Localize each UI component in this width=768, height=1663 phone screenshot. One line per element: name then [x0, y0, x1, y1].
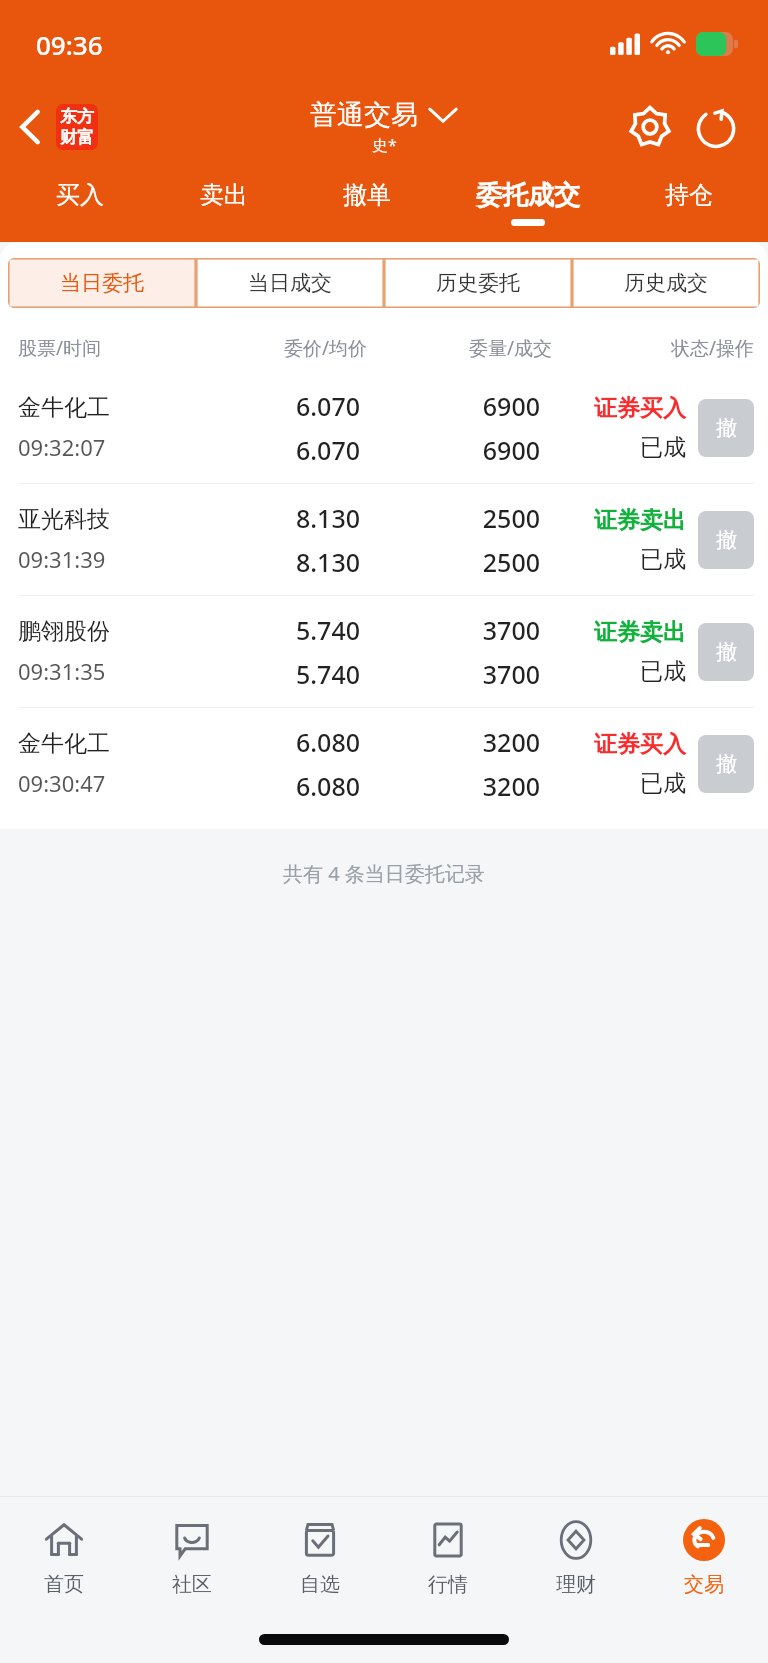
- button[interactable]: Refresh: [690, 101, 742, 153]
- staticText: 撤: [716, 639, 737, 665]
- staticText: 证券卖出: [594, 506, 686, 535]
- staticText: 鹏翎股份: [18, 617, 110, 646]
- button[interactable]: Back: [0, 98, 106, 156]
- staticText: 5.740: [295, 657, 360, 691]
- staticText: 普通交易: [310, 98, 418, 132]
- staticText: 股票/时间: [18, 335, 196, 361]
- staticText: 6.070: [295, 433, 360, 467]
- button[interactable]: 金牛化工: [0, 372, 768, 483]
- staticText: 历史委托: [436, 270, 520, 296]
- staticText: 撤: [716, 527, 737, 553]
- staticText: 3700: [482, 657, 540, 691]
- button[interactable]: 普通交易: [310, 98, 458, 156]
- staticText: 6.070: [295, 389, 360, 423]
- staticText: 证券买入: [594, 730, 686, 759]
- staticText: 委托成交: [476, 179, 580, 212]
- staticText: 持仓: [665, 180, 713, 210]
- staticText: 亚光科技: [18, 505, 110, 534]
- staticText: 金牛化工: [18, 393, 110, 422]
- staticText: 已成: [640, 433, 686, 462]
- staticText: 金牛化工: [18, 729, 110, 758]
- button[interactable]: 首页: [0, 1497, 128, 1615]
- staticText: 8.130: [295, 545, 360, 579]
- button[interactable]: 撤: [698, 623, 754, 681]
- staticText: 2500: [482, 545, 540, 579]
- button[interactable]: 当日成交: [196, 258, 384, 308]
- button[interactable]: 行情: [384, 1497, 512, 1615]
- button[interactable]: Settings: [624, 101, 676, 153]
- staticText: 证券买入: [594, 394, 686, 423]
- staticText: 09:31:39: [18, 544, 106, 574]
- staticText: 6.080: [295, 725, 360, 759]
- button[interactable]: 卖出: [152, 166, 295, 238]
- button[interactable]: 撤: [698, 735, 754, 793]
- button[interactable]: 历史成交: [572, 258, 760, 308]
- staticText: 自选: [300, 1572, 340, 1597]
- button[interactable]: 当日委托: [8, 258, 196, 308]
- staticText: 09:36: [36, 27, 103, 62]
- staticText: 卖出: [200, 180, 248, 210]
- staticText: 委量/成交: [381, 335, 552, 361]
- button[interactable]: 鹏翎股份: [0, 596, 768, 707]
- staticText: 当日成交: [248, 270, 332, 296]
- staticText: 东方: [60, 106, 94, 127]
- button[interactable]: 买入: [8, 166, 152, 238]
- staticText: 委价/均价: [196, 335, 367, 361]
- button[interactable]: 自选: [256, 1497, 384, 1615]
- staticText: 2500: [482, 501, 540, 535]
- staticText: 09:30:47: [18, 768, 106, 798]
- staticText: 交易: [684, 1572, 724, 1597]
- button[interactable]: 亚光科技: [0, 484, 768, 595]
- staticText: 首页: [44, 1572, 84, 1597]
- button[interactable]: 理财: [512, 1497, 640, 1615]
- staticText: 已成: [640, 545, 686, 574]
- staticText: 状态/操作: [566, 335, 754, 361]
- button[interactable]: 撤: [698, 511, 754, 569]
- staticText: 行情: [428, 1572, 468, 1597]
- staticText: 社区: [172, 1572, 212, 1597]
- staticText: 6900: [482, 389, 540, 423]
- staticText: 3700: [482, 613, 540, 647]
- button[interactable]: 金牛化工: [0, 708, 768, 819]
- button[interactable]: 历史委托: [384, 258, 572, 308]
- staticText: 5.740: [295, 613, 360, 647]
- button[interactable]: 持仓: [617, 166, 760, 238]
- staticText: 已成: [640, 657, 686, 686]
- staticText: 已成: [640, 769, 686, 798]
- staticText: 史*: [372, 134, 397, 156]
- staticText: 09:31:35: [18, 656, 106, 686]
- staticText: 撤单: [343, 180, 391, 210]
- staticText: 证券卖出: [594, 618, 686, 647]
- staticText: 财富: [60, 127, 94, 148]
- button[interactable]: 交易: [640, 1497, 768, 1615]
- staticText: 历史成交: [624, 270, 708, 296]
- staticText: 6900: [482, 433, 540, 467]
- button[interactable]: 委托成交: [438, 166, 617, 238]
- staticText: 6.080: [295, 769, 360, 803]
- staticText: 共有 4 条当日委托记录: [283, 860, 485, 887]
- staticText: 撤: [716, 415, 737, 441]
- staticText: 8.130: [295, 501, 360, 535]
- staticText: 理财: [556, 1572, 596, 1597]
- staticText: 撤: [716, 751, 737, 777]
- button[interactable]: 撤: [698, 399, 754, 457]
- staticText: 买入: [56, 180, 104, 210]
- staticText: 当日委托: [60, 270, 144, 296]
- staticText: 09:32:07: [18, 432, 106, 462]
- staticText: 3200: [482, 725, 540, 759]
- button[interactable]: 撤单: [295, 166, 438, 238]
- staticText: 3200: [482, 769, 540, 803]
- button[interactable]: 社区: [128, 1497, 256, 1615]
